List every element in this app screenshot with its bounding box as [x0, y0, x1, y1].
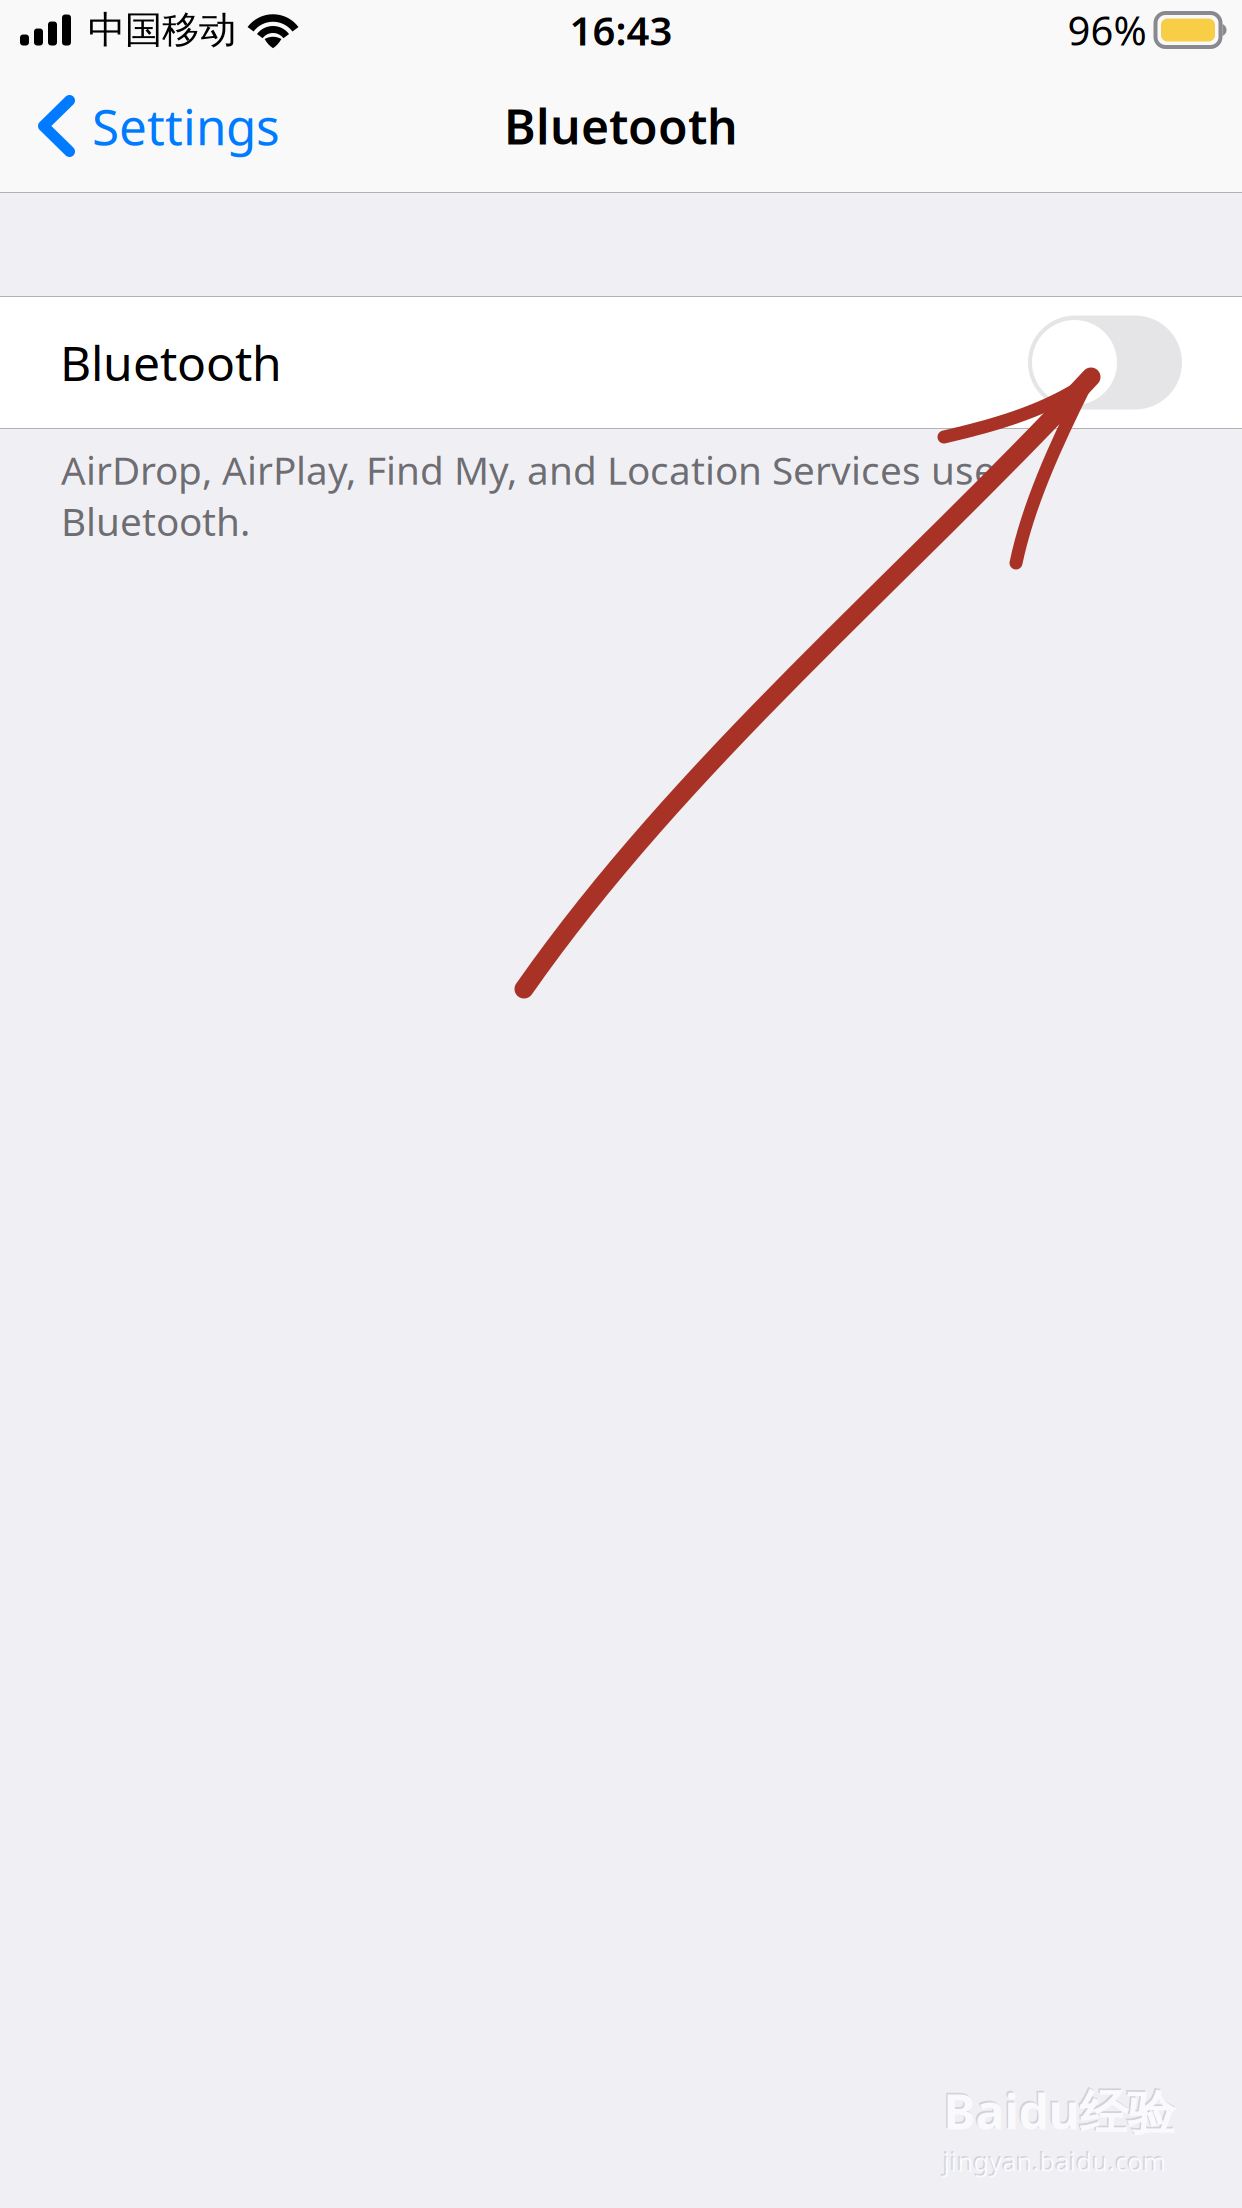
staticText: AirDrop, AirPlay, Find My, and Location …: [61, 444, 996, 547]
staticText: jingyan.baidu.com: [942, 2143, 1165, 2177]
staticText: Settings: [92, 93, 280, 159]
staticText: 中国移动: [88, 7, 236, 53]
staticText: 96%: [1067, 3, 1146, 56]
staticText: Bluetooth: [504, 94, 738, 158]
button[interactable]: Settings: [0, 60, 300, 192]
staticText: 16:43: [569, 3, 672, 56]
staticText: Baidu经验: [944, 2079, 1176, 2143]
button[interactable]: Bluetooth: [0, 297, 1242, 428]
staticText: jingyan.baidu.com: [944, 2145, 1167, 2179]
button[interactable]: Bluetooth, off: [1028, 315, 1182, 409]
staticText: Bluetooth: [60, 331, 282, 394]
staticText: Baidu经验: [942, 2077, 1174, 2141]
